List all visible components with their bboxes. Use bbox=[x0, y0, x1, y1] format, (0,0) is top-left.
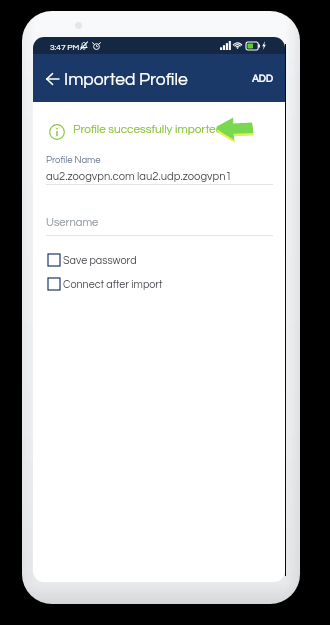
button[interactable]: Connect after import bbox=[46, 278, 273, 290]
button[interactable]: ADD bbox=[241, 66, 284, 92]
button[interactable]: Save password bbox=[46, 254, 273, 266]
staticText: Connect after import bbox=[63, 279, 163, 290]
staticText: Profile Name bbox=[46, 155, 101, 165]
staticText: ADD bbox=[252, 74, 273, 84]
staticText: Username bbox=[46, 217, 99, 229]
staticText: au2.zoogvpn.com lau2.udp.zoogvpn1 bbox=[46, 171, 232, 183]
button[interactable]: Back bbox=[38, 65, 66, 93]
staticText: Imported Profile bbox=[64, 71, 188, 89]
staticText: Profile successfully imported bbox=[73, 123, 223, 135]
staticText: 3:47 PM bbox=[50, 43, 80, 52]
staticText: Save password bbox=[63, 255, 137, 266]
